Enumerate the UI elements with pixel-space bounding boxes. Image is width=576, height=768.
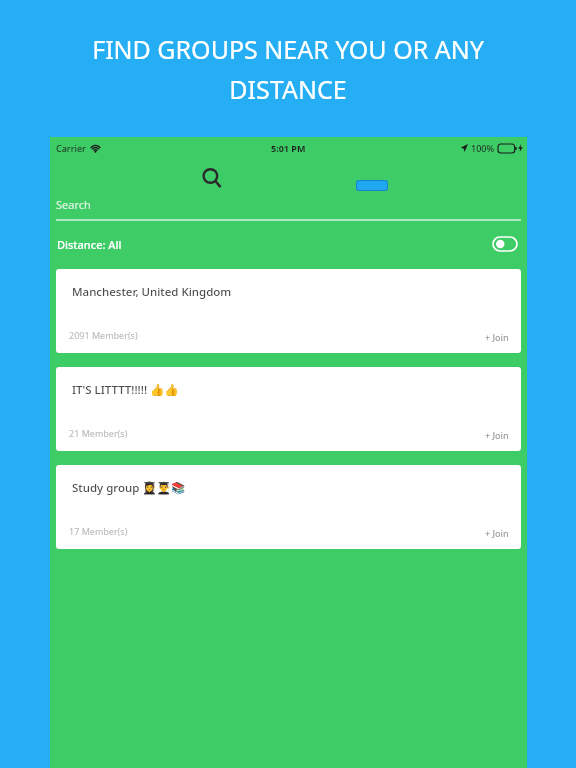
button[interactable]: + Join: [481, 327, 513, 347]
button[interactable]: Study group 👩‍🎓👨‍🎓📚: [56, 465, 521, 549]
staticText: 21 Member(s): [69, 427, 128, 439]
staticText: IT'S LITTTT!!!!! 👍👍: [72, 382, 179, 398]
button[interactable]: Toggle distance filter: [493, 237, 517, 251]
staticText: Carrier: [56, 142, 86, 154]
staticText: Search: [56, 197, 91, 212]
button[interactable]: + Join: [481, 523, 513, 543]
staticText: Manchester, United Kingdom: [72, 284, 232, 300]
button[interactable]: + Join: [481, 425, 513, 445]
button[interactable]: Distance: All: [50, 225, 527, 263]
staticText: + Join: [485, 527, 509, 539]
button[interactable]: Search: [56, 197, 521, 221]
staticText: Distance: All: [57, 237, 122, 252]
staticText: DISTANCE: [229, 72, 347, 106]
staticText: 5:01 PM: [271, 142, 306, 154]
staticText: FIND GROUPS NEAR YOU OR ANY: [92, 32, 484, 66]
button[interactable]: Search: [198, 164, 226, 192]
button[interactable]: Manchester, United Kingdom: [56, 269, 521, 353]
staticText: 2091 Member(s): [69, 329, 138, 341]
staticText: 100%: [471, 142, 495, 154]
button[interactable]: IT'S LITTTT!!!!! 👍👍: [56, 367, 521, 451]
staticText: Study group 👩‍🎓👨‍🎓📚: [72, 480, 186, 496]
staticText: + Join: [485, 429, 509, 441]
staticText: 17 Member(s): [69, 525, 128, 537]
button[interactable]: Filter: [357, 181, 387, 190]
staticText: + Join: [485, 331, 509, 343]
